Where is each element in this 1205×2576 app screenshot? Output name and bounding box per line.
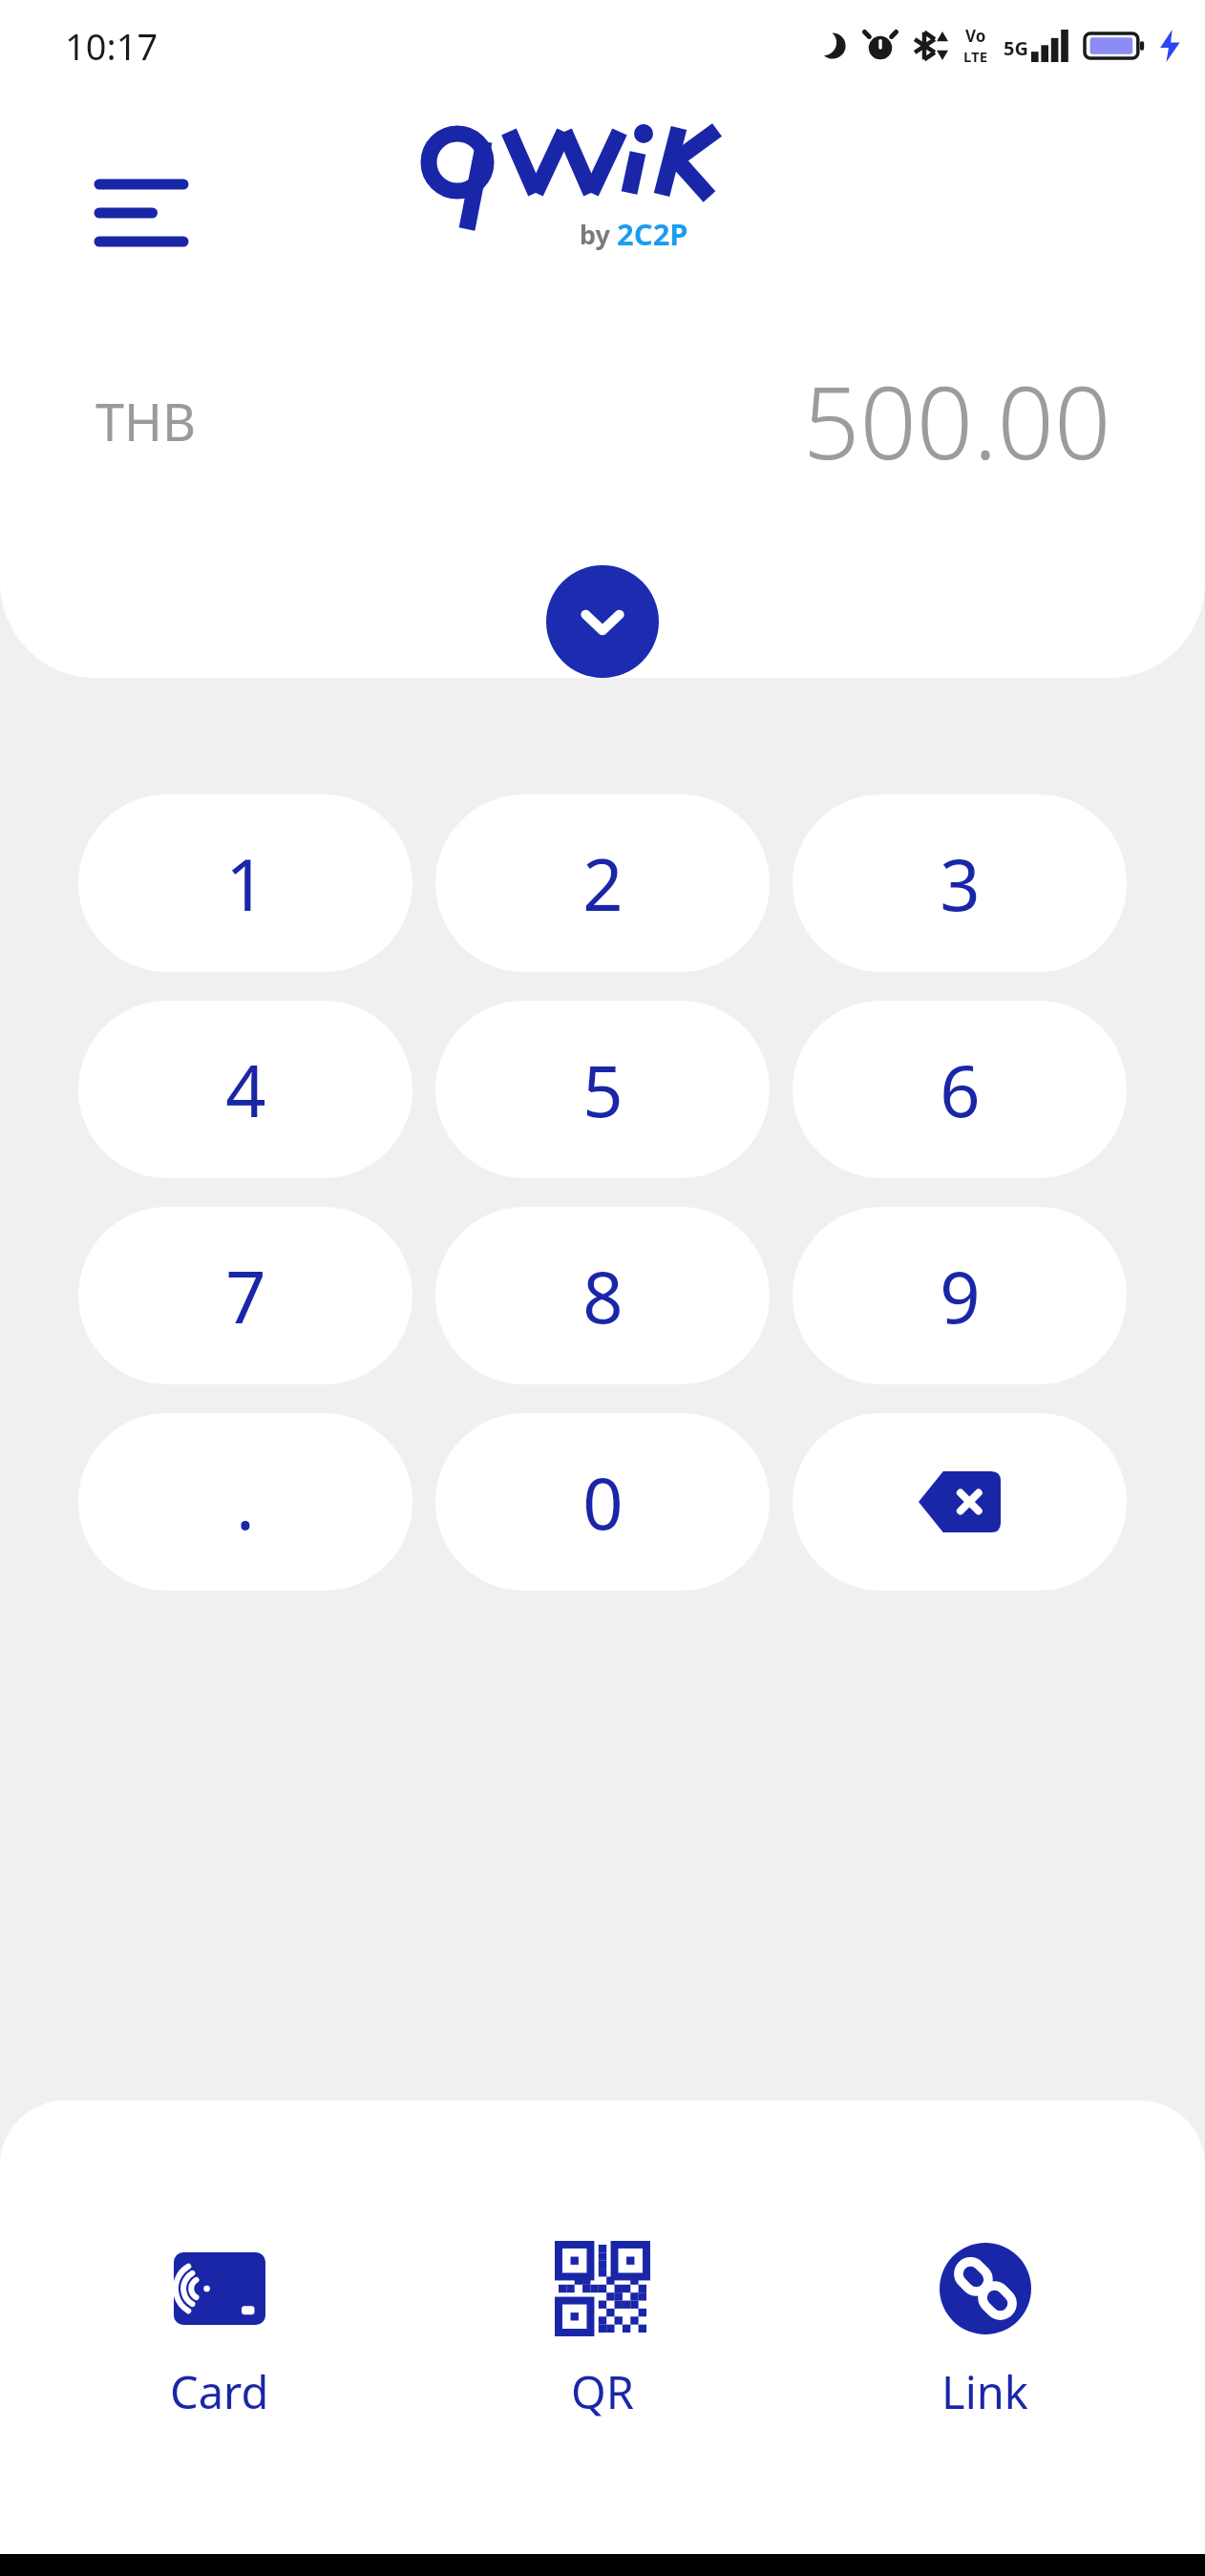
- button[interactable]: Link: [809, 2192, 1161, 2469]
- button[interactable]: Card: [44, 2192, 395, 2469]
- button[interactable]: .: [78, 1413, 412, 1591]
- button[interactable]: Expand amount: [546, 565, 659, 678]
- staticText: 0: [582, 1454, 624, 1551]
- staticText: QR: [571, 2361, 634, 2422]
- button[interactable]: 0: [435, 1413, 770, 1591]
- button[interactable]: Backspace: [793, 1413, 1127, 1591]
- staticText: 5: [582, 1042, 624, 1138]
- button[interactable]: Menu: [84, 160, 199, 265]
- staticText: 1: [225, 835, 266, 932]
- staticText: 3: [940, 835, 981, 932]
- button[interactable]: 1: [78, 794, 412, 972]
- staticText: 6: [940, 1042, 981, 1138]
- button[interactable]: 9: [793, 1207, 1127, 1384]
- staticText: 10:17: [65, 21, 159, 71]
- button[interactable]: 8: [435, 1207, 770, 1384]
- button[interactable]: 5: [435, 1001, 770, 1178]
- staticText: 4: [225, 1042, 266, 1138]
- staticText: THB: [95, 386, 197, 456]
- button[interactable]: 6: [793, 1001, 1127, 1178]
- staticText: 5G: [1004, 35, 1028, 61]
- button[interactable]: 2: [435, 794, 770, 972]
- staticText: LTE: [963, 47, 988, 66]
- staticText: 9: [940, 1248, 981, 1344]
- button[interactable]: 4: [78, 1001, 412, 1178]
- staticText: 2C2P: [617, 214, 688, 254]
- staticText: 2: [582, 835, 624, 932]
- staticText: by: [580, 217, 617, 252]
- staticText: 500.00: [803, 353, 1111, 489]
- staticText: Card: [170, 2361, 269, 2422]
- button[interactable]: QR: [426, 2192, 778, 2469]
- staticText: .: [236, 1454, 255, 1551]
- staticText: 7: [225, 1248, 266, 1344]
- button[interactable]: 7: [78, 1207, 412, 1384]
- staticText: Vo: [965, 25, 986, 47]
- button[interactable]: 3: [793, 794, 1127, 972]
- staticText: 8: [582, 1248, 624, 1344]
- staticText: Link: [941, 2361, 1028, 2422]
